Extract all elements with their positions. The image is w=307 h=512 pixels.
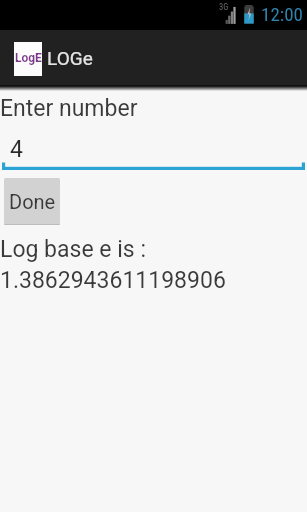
button[interactable]: Number input field xyxy=(2,128,305,170)
staticText: LOGe xyxy=(47,47,93,69)
staticText: LogE xyxy=(15,51,42,65)
staticText: Enter number xyxy=(0,95,138,122)
staticText: 12:00 xyxy=(261,3,303,25)
button[interactable]: LOGe app icon, open navigation xyxy=(14,42,42,76)
other: Mobile signal 3G xyxy=(218,0,238,26)
staticText: 4 xyxy=(10,136,23,163)
button[interactable]: Done xyxy=(4,178,60,225)
staticText: 3G xyxy=(219,2,229,12)
staticText: Log base e is : xyxy=(0,236,146,263)
staticText: 1.3862943611198906 xyxy=(0,267,226,294)
other: Battery charging xyxy=(242,0,256,26)
staticText: Done xyxy=(9,190,56,213)
